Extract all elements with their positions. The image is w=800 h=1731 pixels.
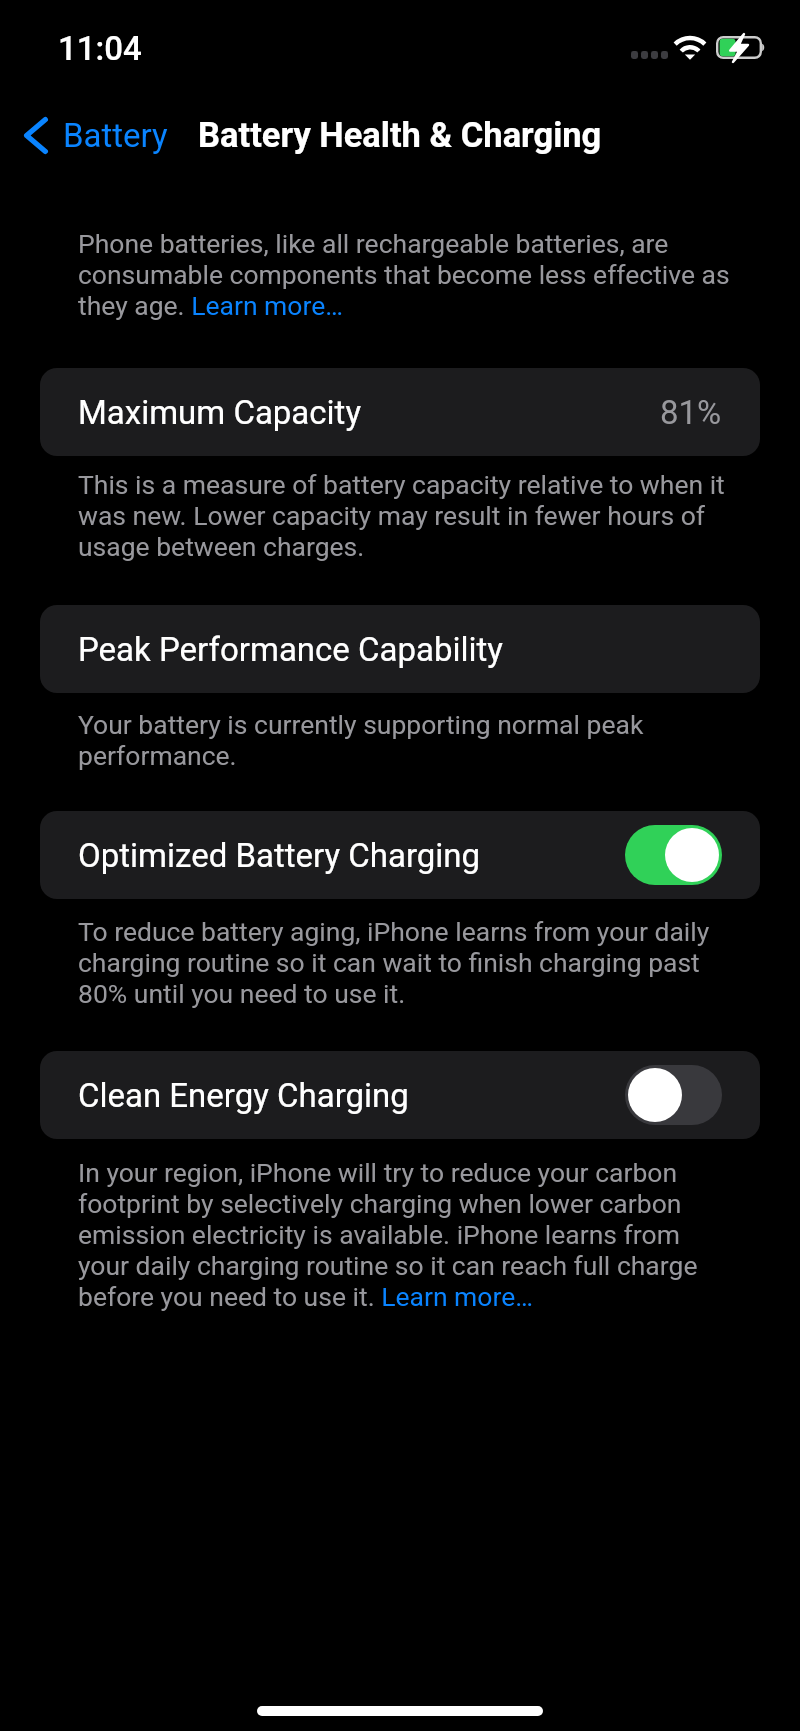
staticText: This is a measure of battery capacity re… <box>78 469 733 562</box>
button[interactable]: Optimized Battery Charging <box>40 811 760 899</box>
button[interactable]: Toggle on <box>625 825 722 885</box>
staticText: Optimized Battery Charging <box>78 836 481 875</box>
button[interactable]: Toggle off <box>625 1065 722 1125</box>
staticText: 81% <box>660 393 722 432</box>
staticText: Clean Energy Charging <box>78 1076 409 1115</box>
staticText: 11:04 <box>58 29 142 68</box>
button[interactable]: Back to Battery <box>16 108 178 163</box>
button[interactable]: Peak Performance Capability <box>40 605 760 693</box>
button[interactable]: Learn more <box>377 1282 525 1311</box>
staticText: In your region, iPhone will try to reduc… <box>78 1157 733 1312</box>
staticText: Battery Health & Charging <box>198 115 602 155</box>
button[interactable]: Clean Energy Charging <box>40 1051 760 1139</box>
staticText: Battery <box>63 116 168 155</box>
staticText: Phone batteries, like all rechargeable b… <box>78 228 733 321</box>
staticText: Maximum Capacity <box>78 393 362 432</box>
button[interactable]: Learn more <box>190 291 338 320</box>
button[interactable]: Maximum Capacity <box>40 368 760 456</box>
staticText: To reduce battery aging, iPhone learns f… <box>78 916 733 1009</box>
staticText: Peak Performance Capability <box>78 630 503 669</box>
staticText: Your battery is currently supporting nor… <box>78 709 733 771</box>
